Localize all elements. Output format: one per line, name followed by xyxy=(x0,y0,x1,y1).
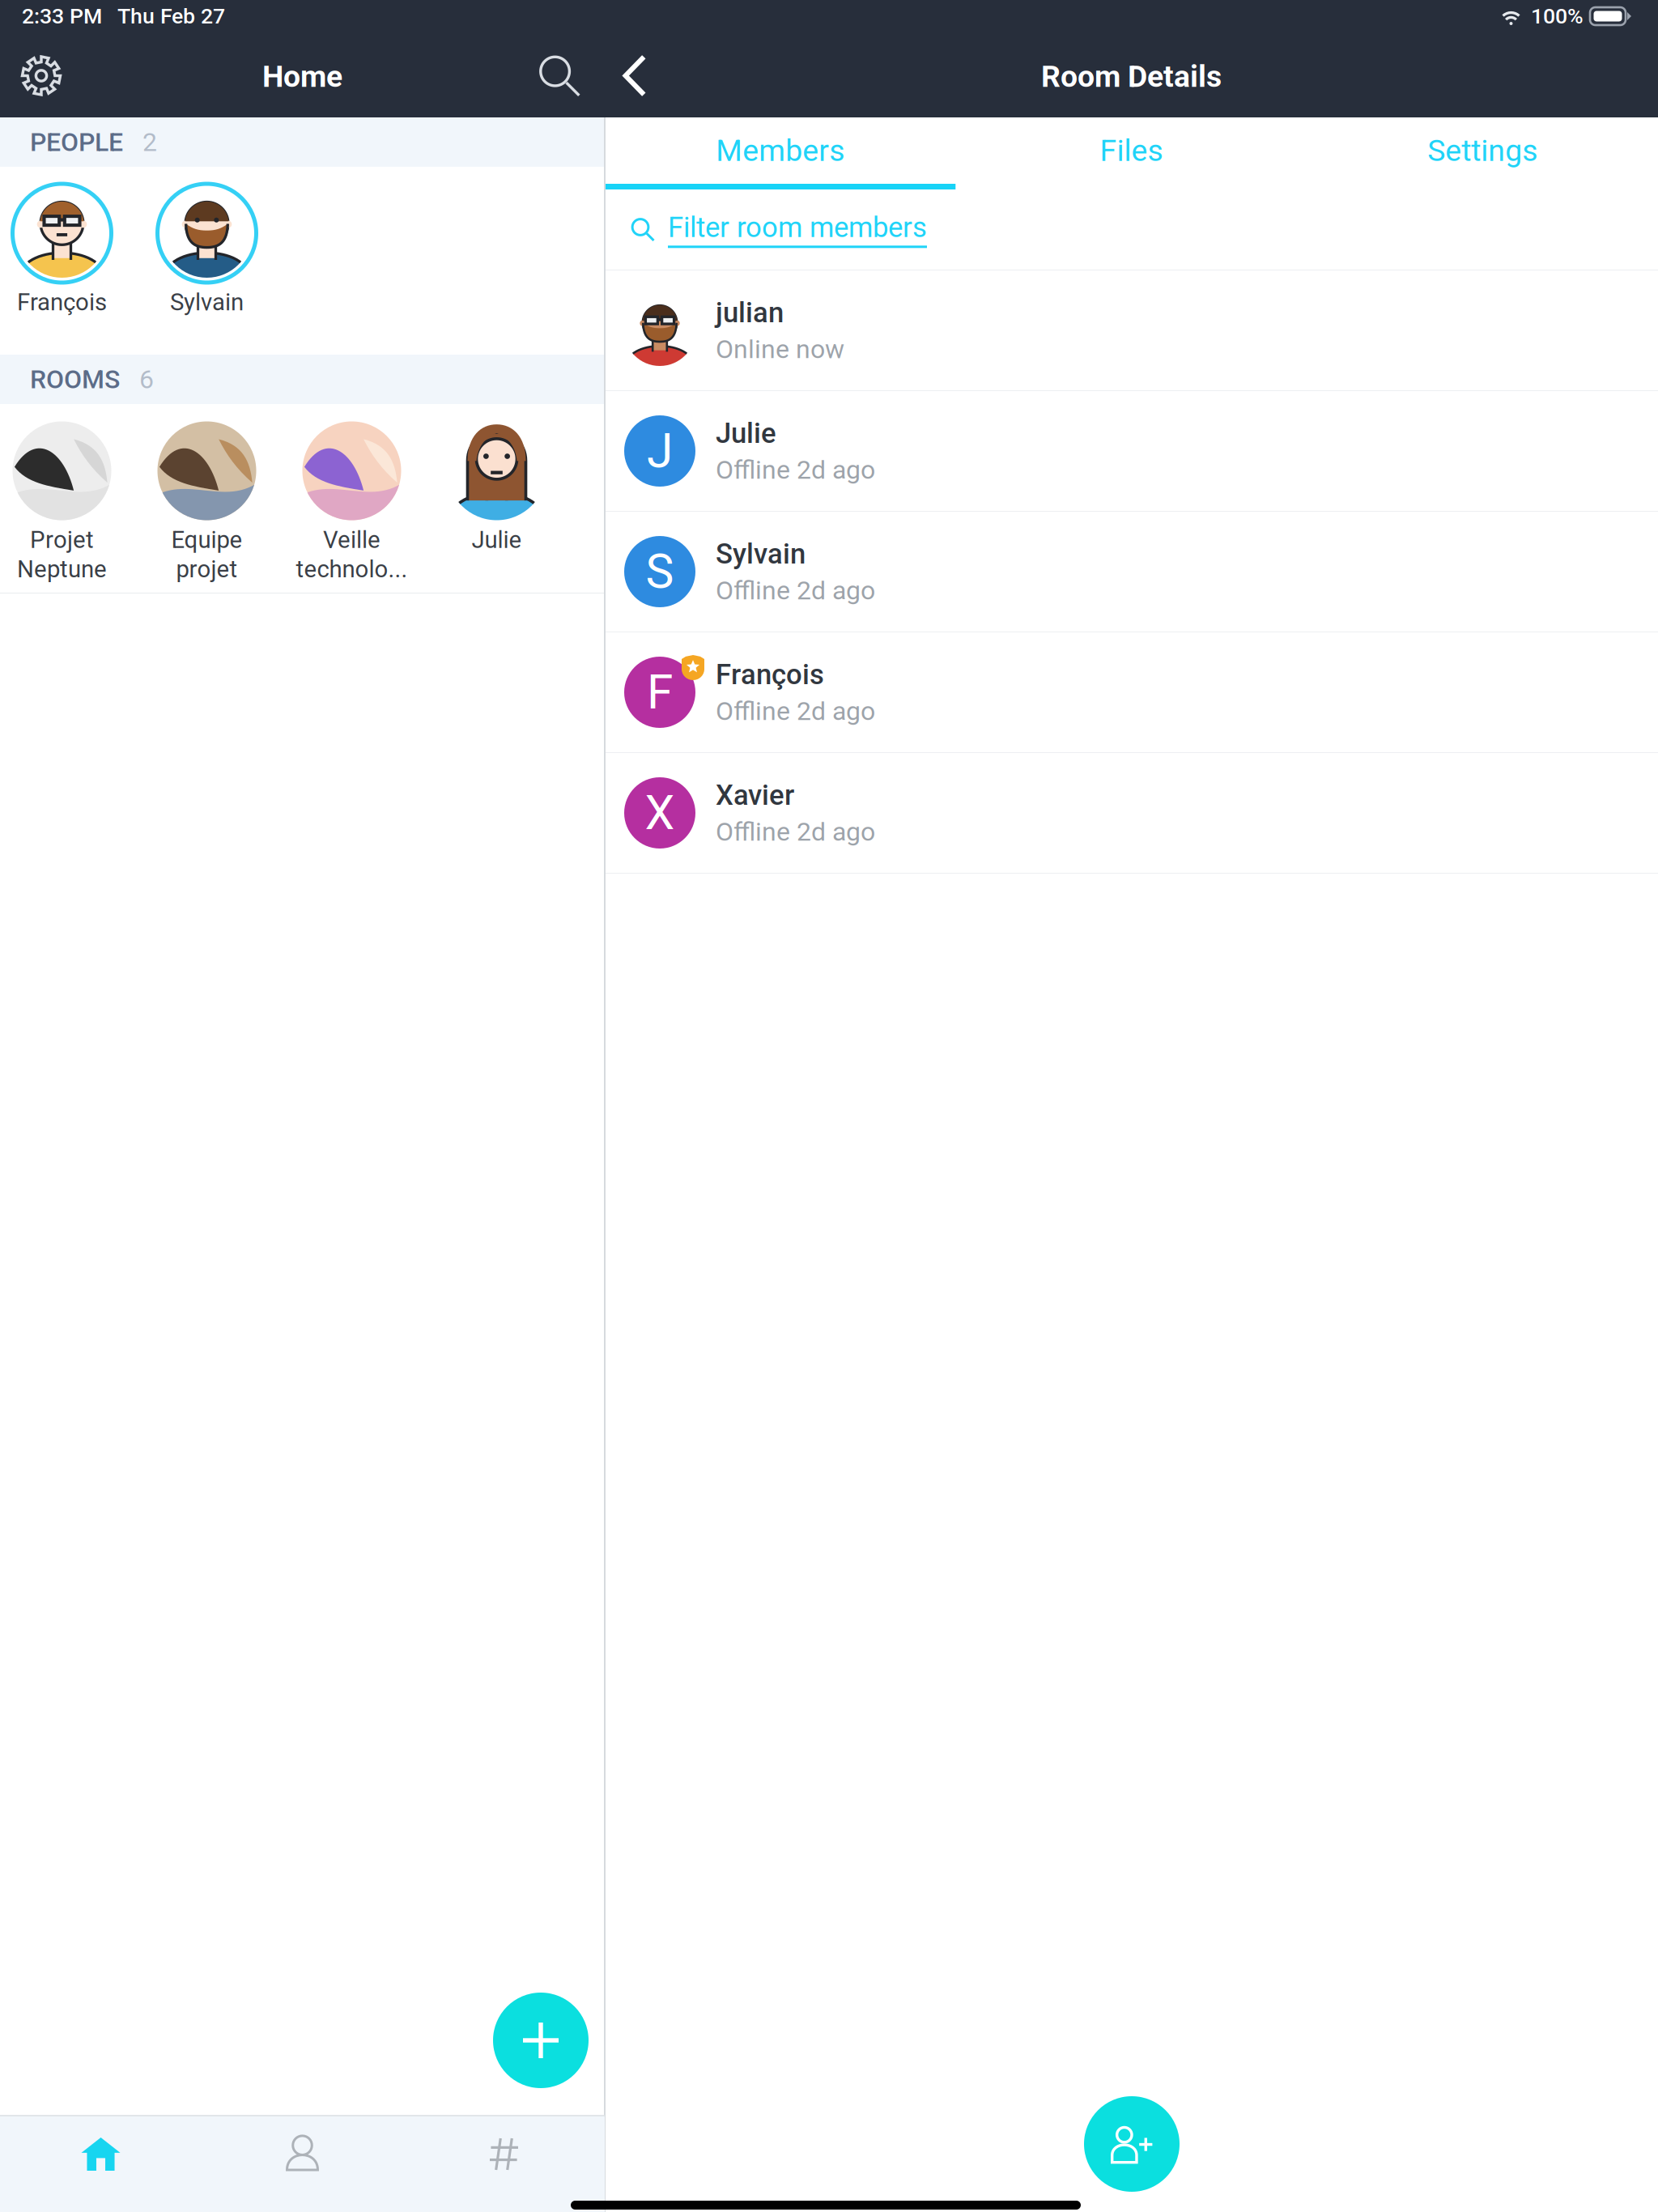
staticText: PEOPLE xyxy=(30,127,123,157)
staticText: Filter room members xyxy=(668,211,927,244)
staticText: Home xyxy=(262,59,342,94)
button[interactable]: Members xyxy=(605,117,956,189)
staticText: Neptune xyxy=(17,555,107,583)
staticText: 6 xyxy=(139,364,154,395)
staticText: Veille xyxy=(323,526,380,554)
button[interactable]: Files xyxy=(956,117,1307,189)
staticText: Settings xyxy=(1427,133,1538,168)
staticText: Sylvain xyxy=(170,288,244,316)
staticText: Offline 2d ago xyxy=(716,817,875,847)
button[interactable]: Rooms xyxy=(403,2116,605,2212)
button[interactable]: Back xyxy=(606,45,667,106)
button[interactable]: Settings xyxy=(1307,117,1658,189)
button[interactable]: New conversation xyxy=(493,1993,589,2088)
staticText: projet xyxy=(176,555,238,583)
staticText: François xyxy=(17,288,107,316)
staticText: Xavier xyxy=(716,779,794,812)
staticText: X xyxy=(645,785,675,841)
button[interactable]: Add member xyxy=(1084,2096,1180,2192)
staticText: François xyxy=(716,658,824,691)
button[interactable]: Home xyxy=(0,2116,202,2212)
button[interactable]: Filter room members xyxy=(605,189,1658,270)
button[interactable]: Veille xyxy=(279,421,424,592)
button[interactable]: Settings xyxy=(11,45,72,106)
staticText: Offline 2d ago xyxy=(716,575,875,606)
staticText: J xyxy=(647,423,673,479)
staticText: Files xyxy=(1100,133,1163,168)
button[interactable]: F xyxy=(605,632,1658,753)
button[interactable]: People xyxy=(202,2116,403,2212)
staticText: Sylvain xyxy=(716,538,806,570)
button[interactable]: François xyxy=(0,184,134,355)
button[interactable]: Projet xyxy=(0,421,134,592)
staticText: Members xyxy=(716,133,845,168)
button[interactable]: Julie xyxy=(424,421,569,592)
staticText: S xyxy=(646,544,674,599)
staticText: technolo... xyxy=(296,555,408,583)
staticText: Room Details xyxy=(1041,59,1222,94)
staticText: julian xyxy=(716,296,784,329)
staticText: 2:33 PM xyxy=(22,4,102,29)
button[interactable]: julian xyxy=(605,270,1658,391)
staticText: Julie xyxy=(472,526,522,554)
button[interactable]: Equipe xyxy=(134,421,279,592)
button[interactable]: Search xyxy=(529,45,590,106)
staticText: F xyxy=(647,664,673,720)
button[interactable]: S xyxy=(605,512,1658,632)
staticText: Offline 2d ago xyxy=(716,455,875,485)
staticText: Equipe xyxy=(171,526,242,554)
staticText: Projet xyxy=(30,526,94,554)
staticText: Thu Feb 27 xyxy=(117,4,225,29)
staticText: Offline 2d ago xyxy=(716,696,875,726)
staticText: Online now xyxy=(716,334,844,364)
button[interactable]: Sylvain xyxy=(134,184,279,355)
staticText: 2 xyxy=(142,127,157,157)
staticText: Julie xyxy=(716,417,776,450)
staticText: 100% xyxy=(1531,4,1584,29)
staticText: ROOMS xyxy=(30,364,120,395)
button[interactable]: J xyxy=(605,391,1658,512)
button[interactable]: X xyxy=(605,753,1658,874)
